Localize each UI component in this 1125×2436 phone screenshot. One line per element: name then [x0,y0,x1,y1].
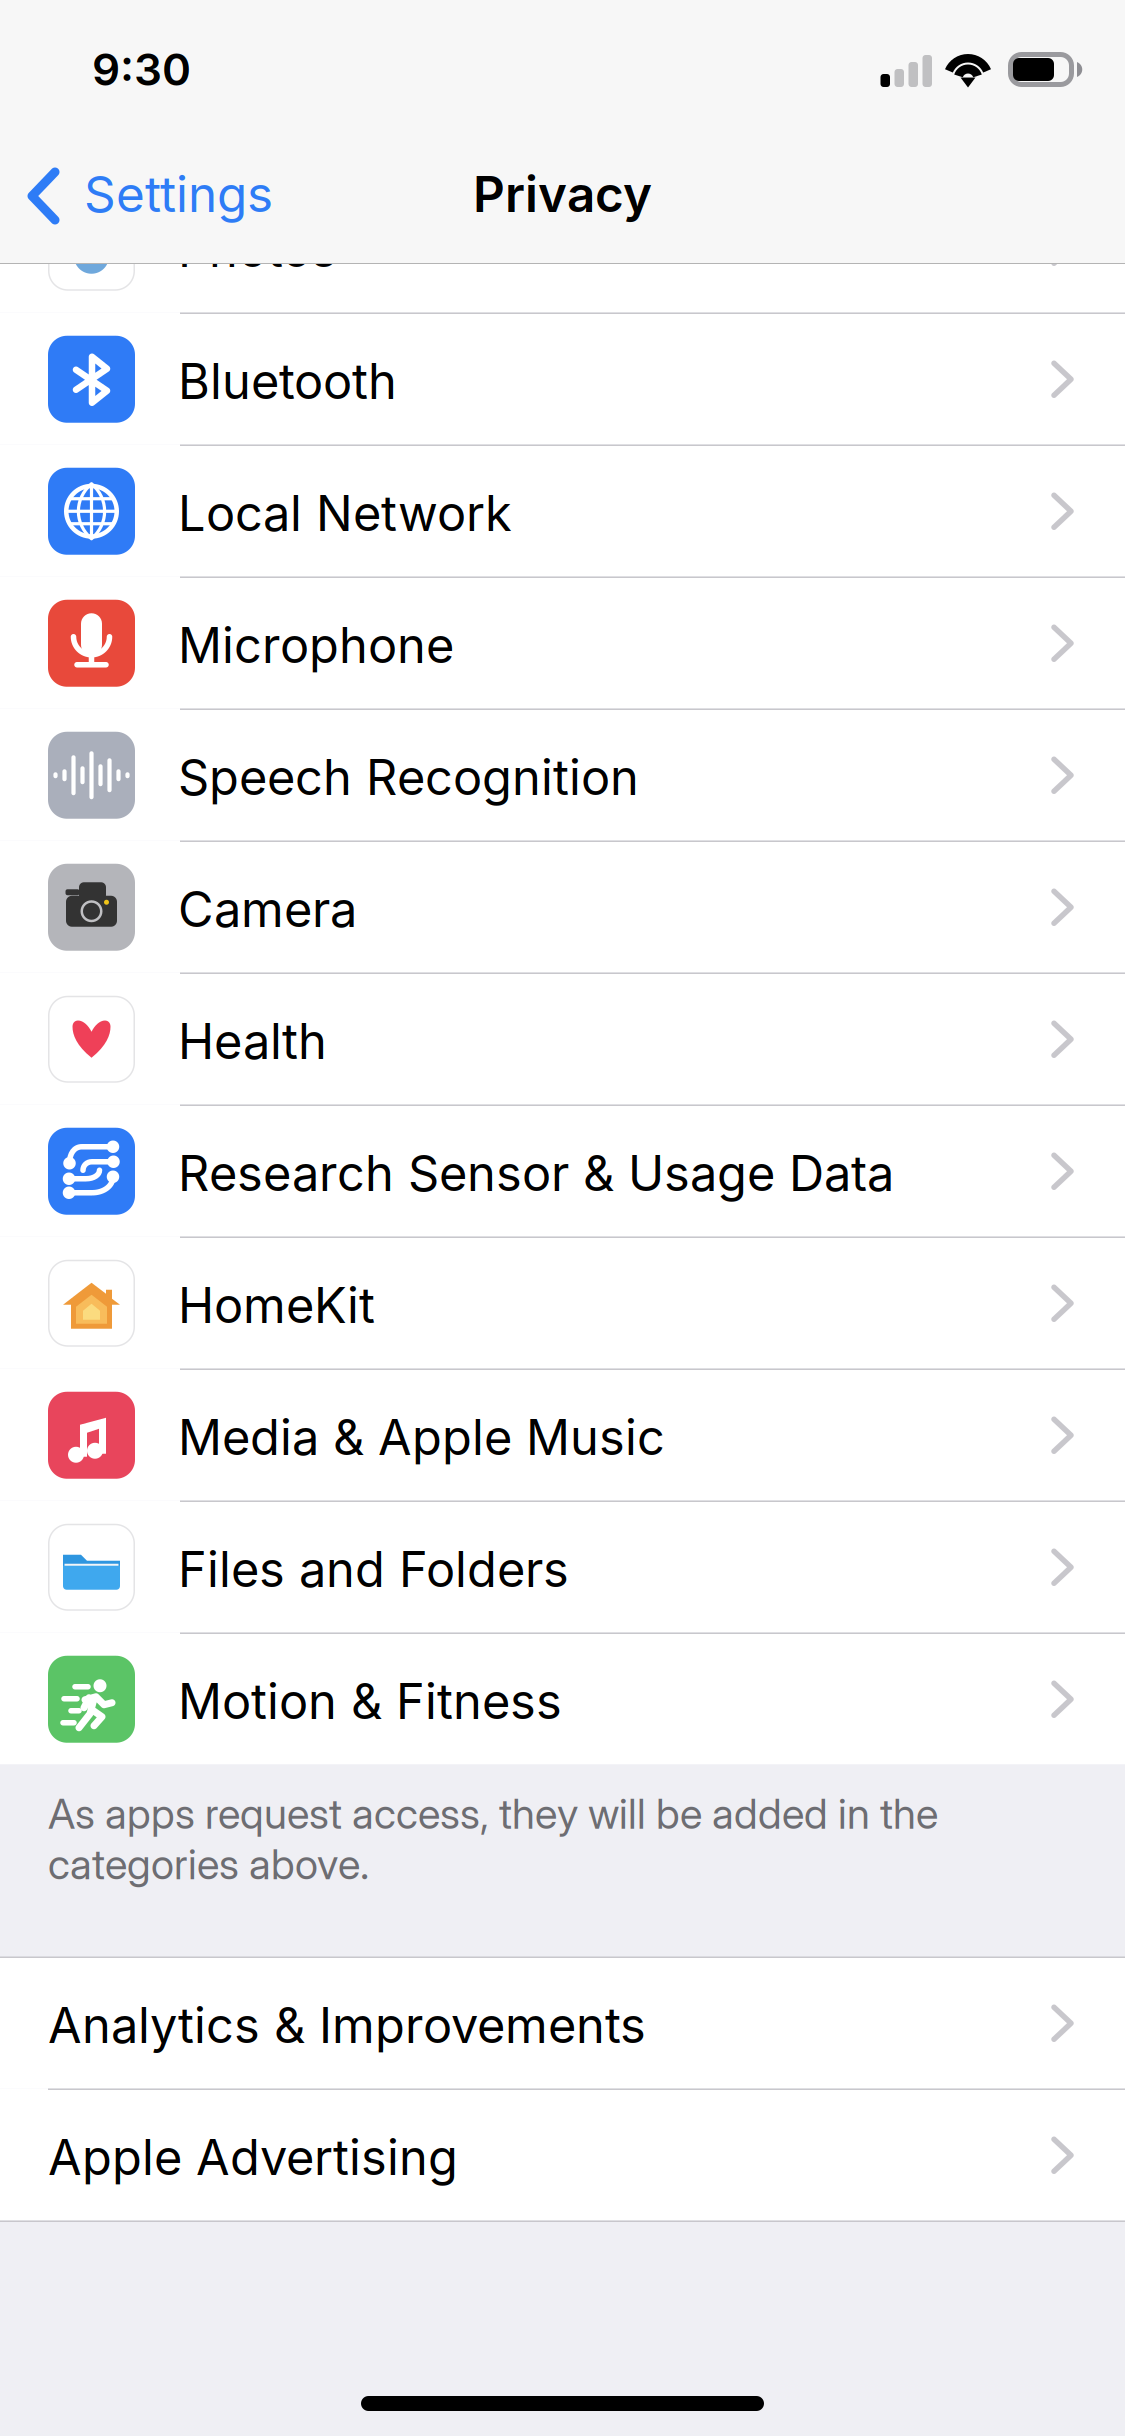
staticText: Bluetooth [178,352,397,411]
staticText: Motion & Fitness [178,1672,562,1731]
staticText: As apps request access, they will be add… [48,1788,938,1889]
button[interactable]: HomeKit [0,1238,1125,1368]
button[interactable]: Motion & Fitness [0,1634,1125,1764]
staticText: Analytics & Improvements [48,1996,646,2055]
button[interactable]: Files and Folders [0,1502,1125,1632]
button[interactable]: Local Network [0,446,1125,576]
button[interactable]: Apple Advertising [0,2090,1125,2220]
staticText: Settings [84,164,273,224]
staticText: Privacy [473,164,652,224]
button[interactable]: Microphone [0,578,1125,708]
button[interactable]: Speech Recognition [0,710,1125,840]
staticText: Files and Folders [178,1540,569,1599]
staticText: Speech Recognition [178,748,639,807]
button[interactable]: Settings [0,125,293,263]
button[interactable]: Bluetooth [0,314,1125,444]
staticText: Apple Advertising [48,2128,458,2187]
staticText: Microphone [178,616,454,675]
staticText: Research Sensor & Usage Data [178,1144,894,1203]
staticText: Photos [178,220,337,279]
button[interactable]: Camera [0,842,1125,972]
staticText: HomeKit [178,1276,375,1335]
staticText: Media & Apple Music [178,1408,665,1467]
button[interactable]: Media & Apple Music [0,1370,1125,1500]
staticText: Camera [178,880,357,939]
button[interactable]: Analytics & Improvements [0,1958,1125,2088]
button[interactable]: Research Sensor & Usage Data [0,1106,1125,1236]
button[interactable]: Health [0,974,1125,1104]
staticText: Local Network [178,484,512,543]
staticText: 9:30 [92,43,191,96]
staticText: Health [178,1012,327,1071]
button[interactable]: Photos [0,182,1125,312]
